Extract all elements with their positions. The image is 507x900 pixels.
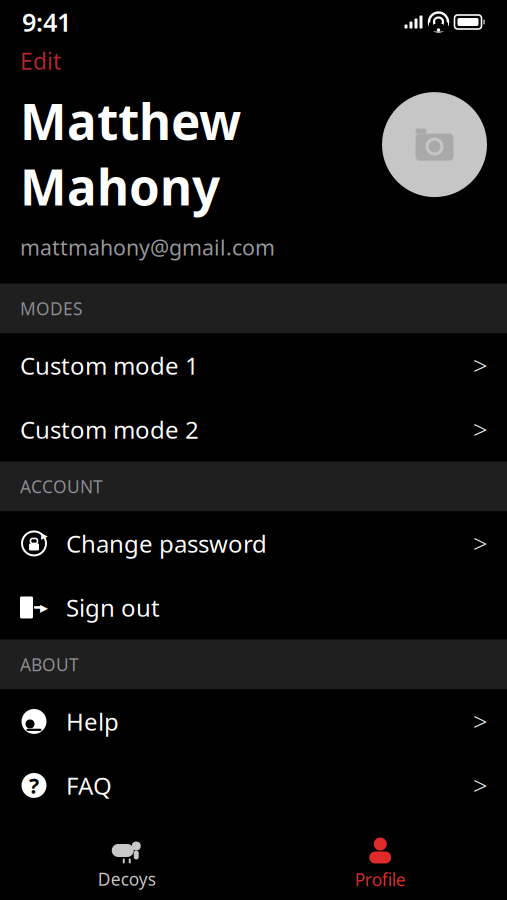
staticText: Sign out bbox=[66, 591, 160, 623]
staticText: Custom mode 2 bbox=[20, 413, 199, 445]
staticText: Decoys bbox=[98, 867, 156, 890]
staticText: 9:41 bbox=[22, 5, 71, 39]
button[interactable]: Edit bbox=[20, 46, 61, 76]
staticText: > bbox=[473, 705, 487, 738]
staticText: Profile bbox=[355, 868, 406, 891]
button[interactable]: Help bbox=[0, 689, 507, 753]
button[interactable]: Decoys bbox=[0, 828, 253, 900]
staticText: Change password bbox=[66, 527, 267, 559]
staticText: ▸ bbox=[40, 598, 48, 617]
staticText: ▸ bbox=[41, 528, 48, 543]
button[interactable]: Custom mode 2 bbox=[0, 397, 507, 461]
staticText: Custom mode 1 bbox=[20, 349, 199, 381]
staticText: Edit bbox=[20, 46, 61, 76]
button[interactable]: Change profile photo bbox=[382, 92, 487, 197]
button[interactable]: ▸ bbox=[0, 511, 507, 575]
staticText: > bbox=[473, 527, 487, 560]
button[interactable]: Profile bbox=[253, 828, 507, 900]
staticText: ACCOUNT bbox=[20, 475, 103, 498]
staticText: Matthew bbox=[20, 88, 241, 154]
staticText: > bbox=[473, 769, 487, 802]
staticText: > bbox=[473, 413, 487, 446]
staticText: ABOUT bbox=[20, 653, 79, 676]
staticText: MODES bbox=[20, 297, 83, 320]
staticText: Mahony bbox=[20, 154, 220, 219]
staticText: ? bbox=[29, 771, 39, 800]
button[interactable]: ? bbox=[0, 753, 507, 817]
button[interactable]: ▸ bbox=[0, 575, 507, 639]
staticText: mattmahony@gmail.com bbox=[20, 233, 275, 261]
staticText: > bbox=[473, 349, 487, 382]
staticText: FAQ bbox=[66, 769, 112, 801]
staticText: Help bbox=[66, 705, 119, 737]
button[interactable]: Custom mode 1 bbox=[0, 333, 507, 397]
